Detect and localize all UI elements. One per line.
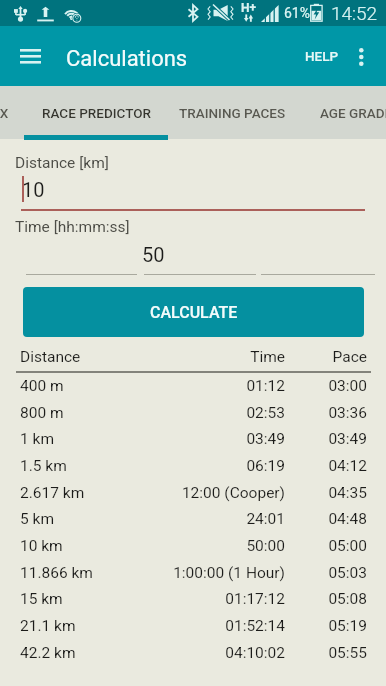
button[interactable]: 1.5 km <box>0 454 386 481</box>
staticText: 10 <box>22 178 45 201</box>
staticText: TRAINING PACES <box>179 105 286 121</box>
button[interactable]: CALCULATE <box>23 287 364 337</box>
staticText: 400 m <box>20 377 64 395</box>
staticText: 05:03 <box>286 564 367 582</box>
button[interactable]: More options <box>343 40 379 74</box>
staticText: 06:19 <box>145 457 285 475</box>
staticText: 01:52:14 <box>145 617 285 635</box>
staticText: 12:00 (Cooper) <box>145 484 285 502</box>
button[interactable]: AGE GRADING <box>320 88 386 137</box>
staticText: 04:48 <box>286 510 367 528</box>
staticText: 11.866 km <box>20 564 93 582</box>
staticText: Time <box>185 348 285 366</box>
staticText: 50:00 <box>145 537 285 555</box>
staticText: 5 km <box>20 510 55 528</box>
button[interactable]: HELP <box>297 39 347 73</box>
staticText: Time [hh:mm:ss] <box>15 218 130 236</box>
staticText: 21.1 km <box>20 617 76 635</box>
button[interactable]: 10 km <box>0 534 386 561</box>
staticText: 03:00 <box>286 377 367 395</box>
staticText: Calculations <box>66 46 188 72</box>
staticText: 04:12 <box>286 457 367 475</box>
button[interactable]: 1 km <box>0 427 386 454</box>
button[interactable]: RACE PREDICTOR <box>24 88 168 137</box>
staticText: 05:19 <box>286 617 367 635</box>
staticText: 1.5 km <box>20 457 67 475</box>
button[interactable]: 15 km <box>0 587 386 614</box>
staticText: 42.2 km <box>20 644 76 662</box>
staticText: 61% <box>284 5 310 21</box>
staticText: 50 <box>142 243 165 266</box>
button[interactable]: 2.617 km <box>0 481 386 508</box>
staticText: 800 m <box>20 404 64 422</box>
staticText: H+ <box>241 1 257 15</box>
staticText: 2.617 km <box>20 484 85 502</box>
staticText: 05:55 <box>286 644 367 662</box>
staticText: 03:49 <box>286 430 367 448</box>
staticText: Distance <box>20 348 81 366</box>
button[interactable]: TRAINING PACES <box>176 88 289 137</box>
staticText: 1 km <box>20 430 55 448</box>
staticText: 10 km <box>20 537 63 555</box>
staticText: 04:35 <box>286 484 367 502</box>
staticText: 24:01 <box>145 510 285 528</box>
button[interactable]: 42.2 km <box>0 641 386 668</box>
button[interactable]: Open navigation drawer <box>8 39 52 73</box>
staticText: 03:36 <box>286 404 367 422</box>
staticText: RACE PREDICTOR <box>42 105 151 121</box>
staticText: Distance [km] <box>15 154 109 172</box>
staticText: AGE GRADING <box>320 105 386 121</box>
staticText: MIX <box>0 105 9 121</box>
staticText: 15 km <box>20 590 63 608</box>
staticText: 05:00 <box>286 537 367 555</box>
staticText: 01:17:12 <box>145 590 285 608</box>
staticText: 1:00:00 (1 Hour) <box>145 564 285 582</box>
staticText: HELP <box>305 48 339 64</box>
button[interactable]: 5 km <box>0 507 386 534</box>
staticText: 03:49 <box>145 430 285 448</box>
button[interactable]: 21.1 km <box>0 614 386 641</box>
staticText: 14:52 <box>331 2 378 24</box>
staticText: 05:08 <box>286 590 367 608</box>
staticText: 01:12 <box>145 377 285 395</box>
staticText: CALCULATE <box>150 303 238 322</box>
button[interactable]: 11.866 km <box>0 561 386 588</box>
staticText: Pace <box>286 348 367 366</box>
button[interactable]: MIX <box>0 88 9 137</box>
button[interactable]: 400 m <box>0 374 386 401</box>
button[interactable]: 800 m <box>0 401 386 428</box>
staticText: 02:53 <box>145 404 285 422</box>
staticText: 04:10:02 <box>145 644 285 662</box>
